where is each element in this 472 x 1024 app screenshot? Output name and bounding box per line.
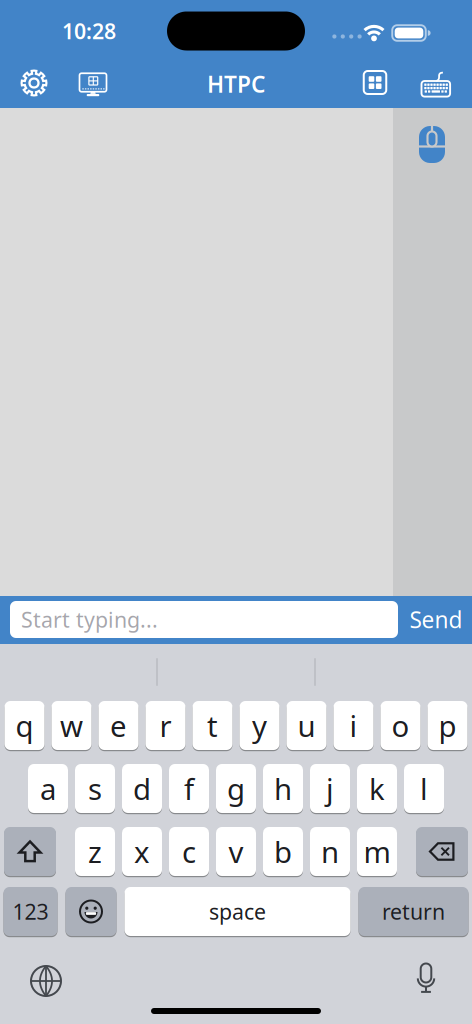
button[interactable]: r [145,701,185,750]
button[interactable]: Remotes [363,71,386,94]
button[interactable]: e [98,701,138,750]
staticText: u [297,706,315,745]
staticText: i [349,706,357,745]
button[interactable]: j [310,764,350,813]
staticText: m [363,832,390,871]
button[interactable]: a [28,764,68,813]
staticText: e [110,706,127,745]
staticText: f [184,769,194,808]
button[interactable]: g [216,764,256,813]
button[interactable]: i [333,701,373,750]
button[interactable]: o [380,701,420,750]
button[interactable]: Keyboard [421,71,450,97]
button[interactable]: Scroll strip [393,108,472,596]
button[interactable]: return [358,887,468,936]
staticText: h [274,769,292,808]
staticText: j [326,769,334,808]
button[interactable]: Remote screen [79,71,106,96]
staticText: t [207,706,218,745]
button[interactable]: space [124,887,350,936]
button[interactable]: d [122,764,162,813]
staticText: p [438,706,456,745]
staticText: a [40,769,56,808]
button[interactable]: Shift [4,827,56,876]
button[interactable]: h [263,764,303,813]
staticText: return [382,897,445,926]
button[interactable]: p [427,701,467,750]
button[interactable]: Delete [416,827,468,876]
button[interactable]: z [75,827,115,876]
staticText: b [274,832,292,871]
staticText: n [321,832,339,871]
staticText: x [134,832,150,871]
staticText: v [228,832,243,871]
button[interactable]: Emoji [65,887,116,936]
button[interactable]: u [286,701,326,750]
button[interactable]: n [310,827,350,876]
staticText: w [60,706,83,745]
staticText: z [88,832,102,871]
button[interactable]: k [357,764,397,813]
button[interactable]: b [263,827,303,876]
staticText: c [182,832,196,871]
staticText: s [88,769,102,808]
staticText: 10:28 [62,17,116,45]
staticText: Start typing... [21,605,158,634]
button[interactable]: m [357,827,397,876]
staticText: q [15,706,33,745]
staticText: o [391,706,409,745]
staticText: l [420,769,428,808]
button[interactable]: w [51,701,91,750]
button[interactable]: q [4,701,44,750]
staticText: g [227,769,245,808]
staticText: r [159,706,171,745]
button[interactable]: Dictate [417,963,434,997]
staticText: HTPC [207,69,265,99]
staticText: d [133,769,151,808]
staticText: 123 [12,897,48,926]
button[interactable]: v [216,827,256,876]
staticText: y [252,706,267,745]
button[interactable]: l [404,764,444,813]
button[interactable]: x [122,827,162,876]
staticText: space [209,897,266,926]
button[interactable]: f [169,764,209,813]
button[interactable]: Settings [20,69,47,96]
button[interactable]: Text input [10,601,398,638]
button[interactable]: c [169,827,209,876]
button[interactable]: Send [404,601,468,638]
staticText: k [369,769,385,808]
button[interactable]: y [239,701,279,750]
button[interactable]: t [192,701,232,750]
button[interactable]: Next keyboard [30,965,61,996]
button[interactable]: 123 [3,887,57,936]
staticText: Send [409,604,462,634]
button[interactable]: s [75,764,115,813]
